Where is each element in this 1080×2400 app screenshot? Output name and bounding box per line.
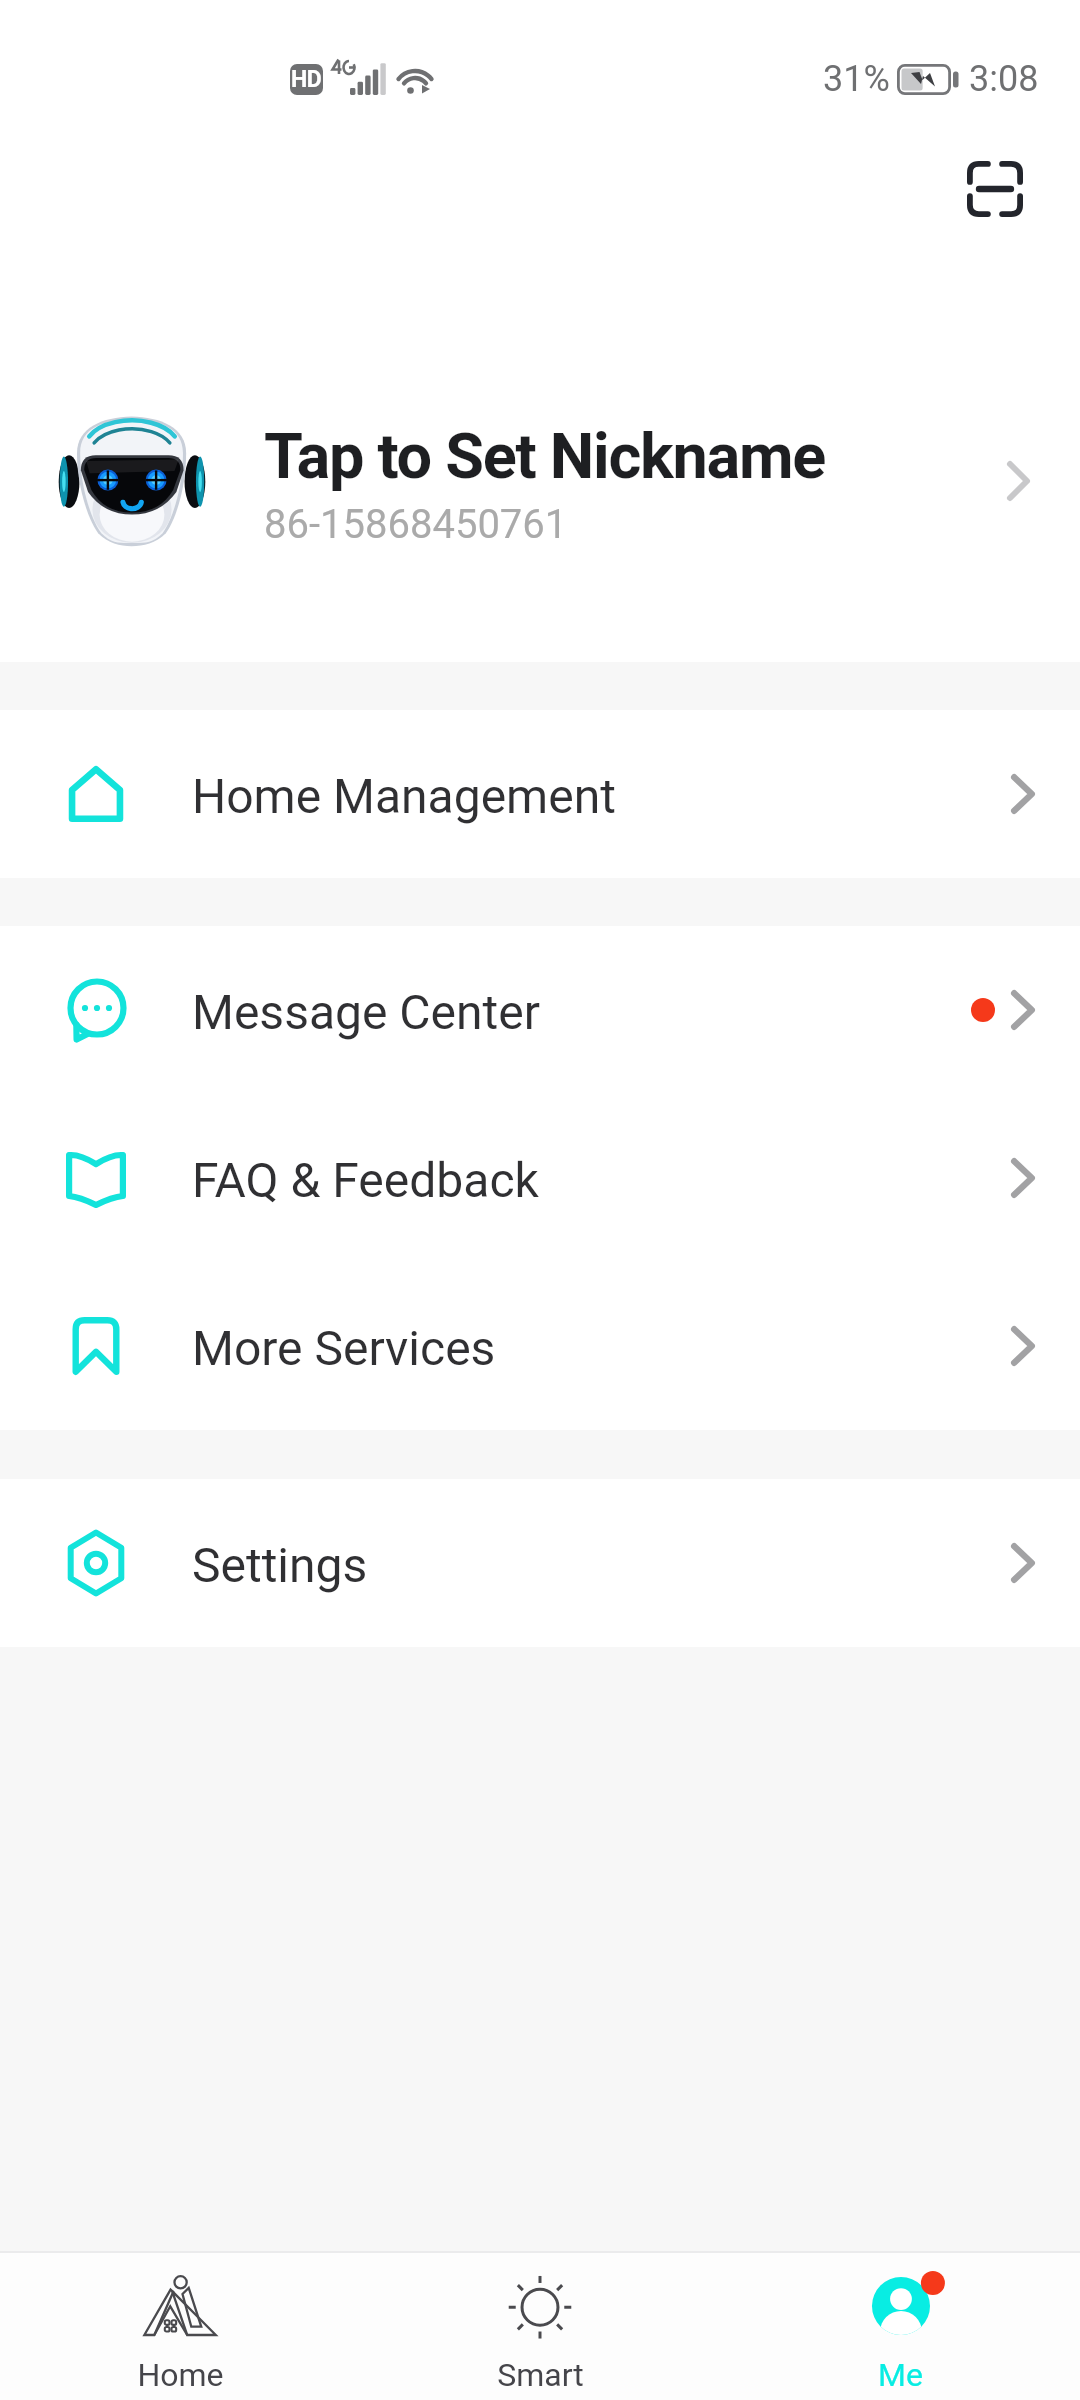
staticText: FAQ & Feedback [192,1152,539,1208]
staticText: 3:08 [969,58,1039,100]
staticText: Tap to Set Nickname [264,420,825,494]
staticText: Home [137,2356,224,2394]
button[interactable]: Scan QR code [947,141,1043,237]
staticText: HD [291,66,322,93]
staticText: Settings [192,1537,368,1593]
staticText: Smart [497,2356,584,2394]
staticText: 31% [823,58,890,100]
staticText: 86-15868450761 [264,501,568,548]
staticText: Home Management [192,768,616,824]
button[interactable]: Me [720,2253,1080,2400]
button[interactable]: Home [0,2253,360,2400]
staticText: More Services [192,1320,496,1376]
button[interactable]: Home Management [0,710,1080,878]
button[interactable]: Tap to Set Nickname [0,390,1080,572]
button[interactable]: Settings [0,1479,1080,1647]
staticText: Message Center [192,984,540,1040]
staticText: Me [878,2356,923,2394]
button[interactable]: More Services [0,1262,1080,1430]
button[interactable]: FAQ & Feedback [0,1094,1080,1262]
button[interactable]: Message Center [0,926,1080,1094]
button[interactable]: Smart [360,2253,720,2400]
